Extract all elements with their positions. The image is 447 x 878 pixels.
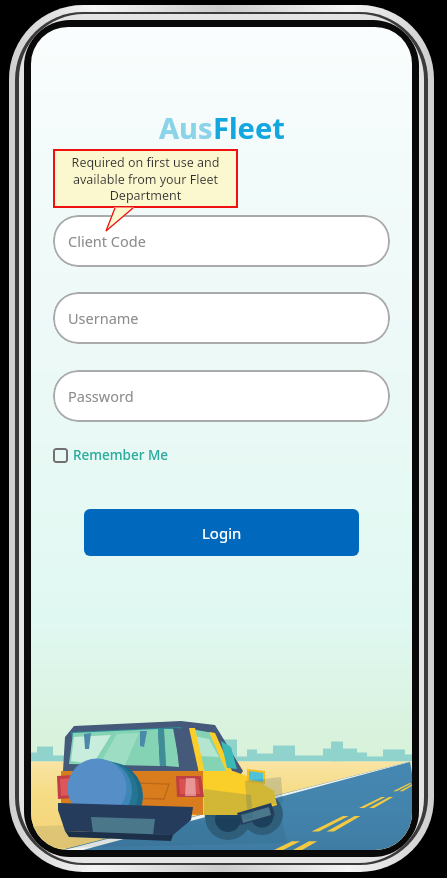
button[interactable]: Login xyxy=(84,509,359,556)
staticText: Aus xyxy=(159,108,213,147)
staticText: Required on first use and available from… xyxy=(58,154,233,203)
staticText: Fleet xyxy=(213,108,285,147)
staticText: Client Code xyxy=(68,231,146,251)
staticText: Username xyxy=(68,308,139,328)
button[interactable]: Remember Me xyxy=(53,446,169,464)
staticText: Login xyxy=(202,523,242,543)
staticText: Remember Me xyxy=(73,446,169,464)
button[interactable]: Username xyxy=(53,292,390,344)
staticText: Password xyxy=(68,386,134,406)
button[interactable]: Password xyxy=(53,370,390,422)
button[interactable]: Client Code xyxy=(53,215,390,267)
